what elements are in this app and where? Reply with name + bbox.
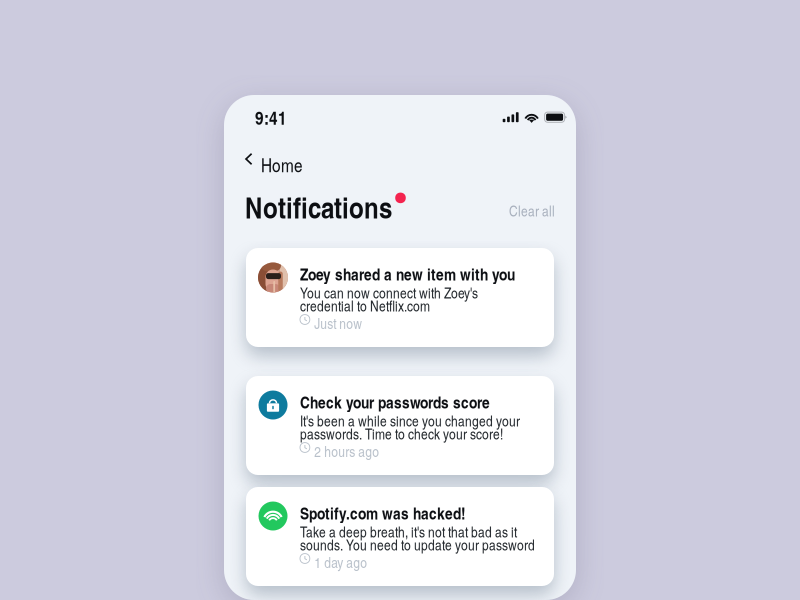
staticText: Zoey shared a new item with you	[300, 262, 515, 285]
staticText: 2 hours ago	[314, 441, 379, 461]
button[interactable]: Zoey shared a new item with you	[246, 248, 554, 347]
staticText: Clear all	[509, 200, 555, 221]
staticText: passwords. Time to check your score!	[300, 423, 503, 444]
staticText: You can now connect with Zoey's	[300, 282, 478, 303]
staticText: Spotify.com was hacked!	[300, 501, 466, 524]
staticText: Check your passwords score	[300, 390, 490, 413]
staticText: 1 day ago	[314, 552, 367, 572]
button[interactable]: Clear all	[509, 186, 555, 215]
staticText: credential to Netflix.com	[300, 295, 430, 316]
staticText: sounds. You need to update your password	[300, 534, 535, 555]
staticText: Just now	[314, 313, 362, 333]
staticText: Take a deep breath, it's not that bad as…	[300, 521, 517, 542]
button[interactable]: Spotify.com was hacked!	[246, 487, 554, 586]
button[interactable]: Check your passwords score	[246, 376, 554, 475]
staticText: Notifications	[245, 186, 392, 227]
staticText: It's been a while since you changed your	[300, 410, 520, 431]
staticText: 9:41	[255, 104, 287, 130]
staticText: Home	[261, 152, 303, 178]
button[interactable]: Home	[245, 150, 303, 168]
